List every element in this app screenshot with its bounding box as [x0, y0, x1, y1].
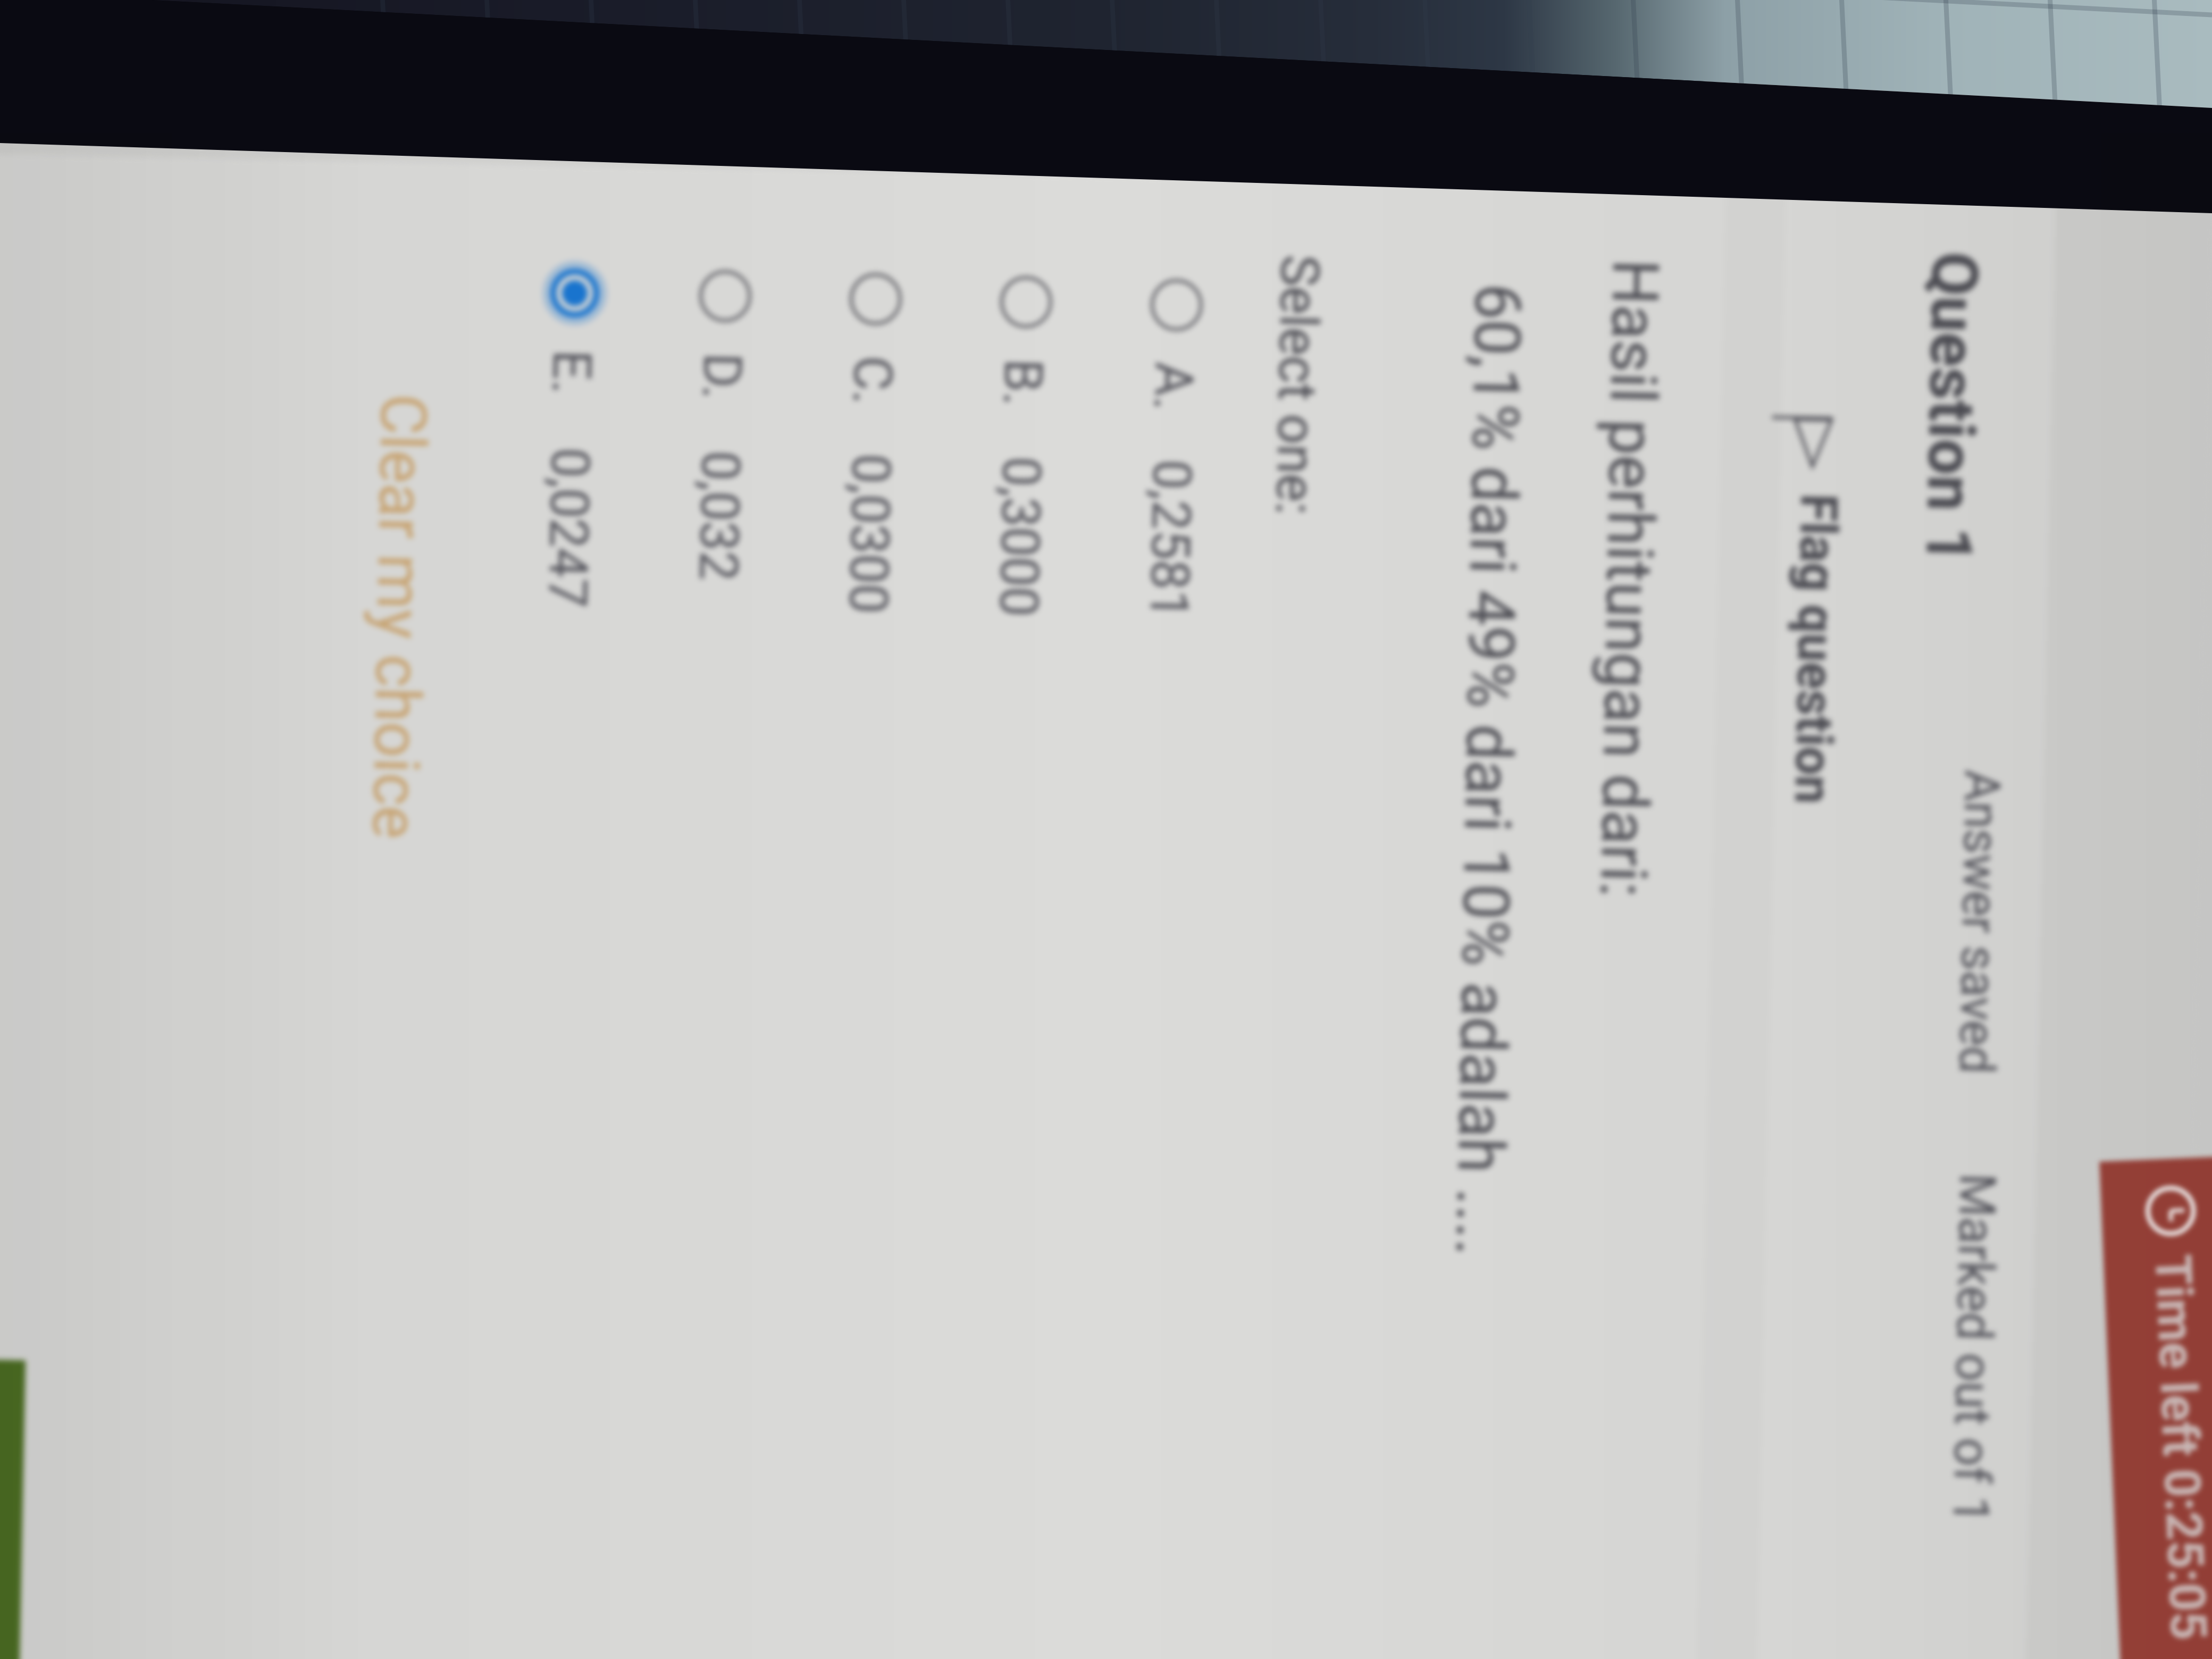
staticText: A. [1142, 361, 1205, 411]
staticText: B. [992, 358, 1055, 407]
staticText: E. [540, 349, 603, 395]
staticText: Question 1 [1911, 251, 1992, 565]
staticText: Answer saved [1947, 769, 2011, 1074]
staticText: Marked out of 1 [1941, 1173, 2007, 1525]
button[interactable]: A. [1082, 240, 1245, 1659]
staticText: Flag question [1783, 493, 1849, 805]
button[interactable]: E. [481, 228, 643, 1659]
button[interactable]: Clear my choice [358, 393, 440, 840]
staticText: Clear my choice [358, 393, 440, 840]
staticText: C. [841, 355, 904, 405]
staticText: Hasil perhitungan dari: [1585, 259, 1673, 898]
button[interactable]: D. [631, 231, 793, 1659]
staticText: 60,1% dari 49% dari 10% adalah .... [1441, 283, 1535, 1257]
button[interactable]: Next page [0, 1357, 26, 1659]
staticText: 0,2581 [1138, 459, 1203, 620]
staticText: Time left 0:25:05 [2143, 1253, 2212, 1641]
staticText: 0,3000 [987, 456, 1053, 617]
button[interactable]: Flag question [1756, 402, 1851, 871]
staticText: D. [691, 352, 754, 400]
button[interactable]: C. [782, 234, 944, 1659]
staticText: Select one: [1264, 254, 1331, 516]
staticText: 0,0247 [536, 447, 601, 608]
button[interactable]: Time left 0:25:05 [2099, 1157, 2212, 1659]
staticText: 0,0300 [837, 453, 902, 614]
button[interactable]: B. [932, 237, 1094, 1659]
staticText: 0,032 [687, 450, 752, 582]
